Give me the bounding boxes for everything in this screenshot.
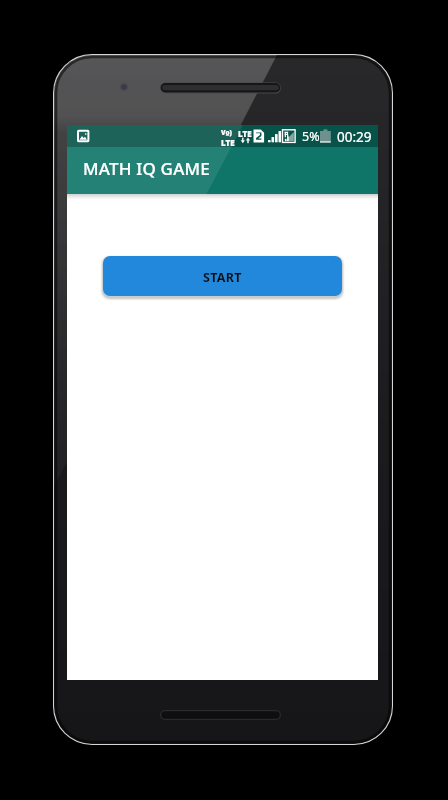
staticText: START	[203, 269, 242, 286]
staticText: 00:29	[337, 128, 372, 146]
button[interactable]: START	[103, 256, 342, 296]
staticText: MATH IQ GAME	[83, 157, 210, 180]
staticText: LTE	[221, 137, 235, 148]
staticText: 5%	[302, 128, 320, 145]
staticText: Vo̲)	[221, 128, 232, 137]
staticText: LTE	[238, 128, 252, 139]
